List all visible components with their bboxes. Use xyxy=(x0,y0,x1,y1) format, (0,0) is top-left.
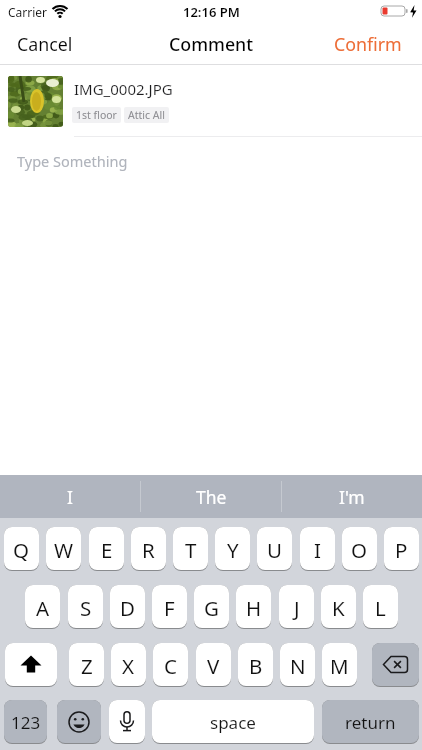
button[interactable] xyxy=(57,700,101,744)
staticText: Comment xyxy=(169,32,254,56)
button[interactable]: Confirm xyxy=(334,32,402,56)
staticText: E xyxy=(101,536,113,564)
staticText: W xyxy=(54,536,74,564)
staticText: space xyxy=(210,711,256,734)
button[interactable]: G xyxy=(194,585,229,629)
button[interactable] xyxy=(5,643,57,687)
button[interactable]: I xyxy=(300,527,335,571)
staticText: 12:16 PM xyxy=(183,3,240,21)
button[interactable]: L xyxy=(363,585,398,629)
staticText: Type Something xyxy=(17,151,128,171)
staticText: Q xyxy=(13,536,30,564)
staticText: F xyxy=(164,594,175,622)
staticText: D xyxy=(120,594,135,622)
staticText: P xyxy=(395,536,408,564)
button[interactable]: return xyxy=(322,700,419,744)
staticText: T xyxy=(185,536,197,564)
button[interactable]: A xyxy=(25,585,60,629)
staticText: B xyxy=(249,652,263,680)
button[interactable] xyxy=(109,700,145,744)
button[interactable]: B xyxy=(238,643,273,687)
staticText: Confirm xyxy=(334,32,402,56)
staticText: G xyxy=(204,594,219,622)
staticText: M xyxy=(330,652,349,680)
staticText: J xyxy=(294,594,300,622)
button[interactable]: space xyxy=(152,700,314,744)
button[interactable]: X xyxy=(111,643,146,687)
staticText: X xyxy=(122,652,135,680)
button[interactable]: J xyxy=(279,585,314,629)
staticText: I xyxy=(314,536,321,564)
button[interactable]: R xyxy=(131,527,166,571)
button[interactable]: 123 xyxy=(4,700,47,744)
staticText: The xyxy=(196,485,227,509)
button[interactable]: M xyxy=(322,643,357,687)
staticText: S xyxy=(80,594,92,622)
staticText: A xyxy=(36,594,50,622)
button[interactable]: S xyxy=(68,585,103,629)
button[interactable]: IMG_0002.JPG xyxy=(0,65,422,136)
button[interactable]: Type Something xyxy=(0,137,422,185)
staticText: N xyxy=(290,652,306,680)
button[interactable]: Y xyxy=(215,527,250,571)
button[interactable]: T xyxy=(173,527,208,571)
staticText: R xyxy=(142,536,155,564)
button[interactable]: I'm xyxy=(282,475,422,518)
button[interactable]: K xyxy=(321,585,356,629)
button[interactable]: U xyxy=(257,527,292,571)
staticText: IMG_0002.JPG xyxy=(74,79,173,99)
button[interactable]: P xyxy=(384,527,419,571)
button[interactable]: D xyxy=(110,585,145,629)
staticText: Y xyxy=(227,536,239,564)
staticText: Z xyxy=(81,652,93,680)
staticText: V xyxy=(207,652,220,680)
button[interactable]: V xyxy=(196,643,231,687)
staticText: C xyxy=(164,652,177,680)
button[interactable]: N xyxy=(280,643,315,687)
button[interactable]: Z xyxy=(69,643,104,687)
staticText: U xyxy=(267,536,282,564)
staticText: H xyxy=(246,594,262,622)
staticText: 123 xyxy=(11,711,41,734)
button[interactable]: Q xyxy=(4,527,39,571)
button[interactable]: F xyxy=(152,585,187,629)
button[interactable] xyxy=(372,643,419,687)
button[interactable]: O xyxy=(342,527,377,571)
button[interactable]: E xyxy=(89,527,124,571)
staticText: L xyxy=(375,594,386,622)
staticText: O xyxy=(351,536,368,564)
button[interactable]: H xyxy=(236,585,271,629)
staticText: Attic All xyxy=(128,108,165,122)
staticText: Cancel xyxy=(17,32,73,56)
staticText: I xyxy=(67,485,73,509)
button[interactable]: Cancel xyxy=(17,32,73,56)
button[interactable]: C xyxy=(153,643,188,687)
staticText: 1st floor xyxy=(76,108,117,122)
staticText: Carrier xyxy=(8,4,48,20)
button[interactable]: W xyxy=(46,527,81,571)
button[interactable]: The xyxy=(141,475,281,518)
staticText: K xyxy=(332,594,345,622)
staticText: I'm xyxy=(339,485,365,509)
staticText: return xyxy=(345,711,396,734)
button[interactable]: I xyxy=(0,475,140,518)
